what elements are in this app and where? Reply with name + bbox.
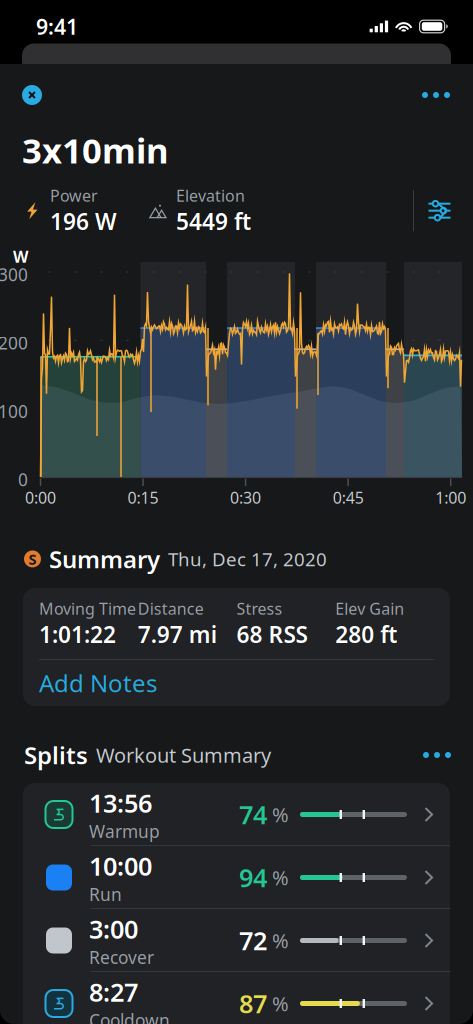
staticText: 0:45 [333, 487, 364, 508]
staticText: 196 W [50, 206, 117, 236]
staticText: 0:30 [230, 487, 261, 508]
staticText: 300 [0, 263, 28, 286]
staticText: Thu, Dec 17, 2020 [168, 546, 327, 571]
staticText: 72 [239, 924, 267, 957]
staticText: 3:00 [89, 912, 138, 946]
staticText: Power [50, 185, 98, 206]
staticText: Distance [138, 598, 204, 619]
staticText: 280 ft [335, 619, 397, 649]
staticText: 87 [239, 987, 267, 1020]
staticText: 1:00 [435, 487, 466, 508]
button[interactable]: More options [408, 75, 464, 115]
staticText: Cooldown [89, 1009, 170, 1024]
staticText: Add Notes [39, 667, 157, 699]
button[interactable]: 10:00 [23, 846, 450, 909]
button[interactable]: 13:56 [23, 783, 450, 846]
staticText: Stress [236, 598, 282, 619]
button[interactable]: Add Notes [23, 660, 450, 706]
button[interactable]: 3:00 [23, 909, 450, 972]
staticText: 94 [239, 861, 267, 894]
staticText: Elevation [176, 185, 245, 206]
button[interactable]: Splits options [409, 738, 465, 772]
staticText: 10:00 [89, 849, 152, 883]
staticText: S [28, 549, 36, 569]
staticText: % [272, 990, 289, 1017]
staticText: Warmup [89, 820, 160, 843]
staticText: % [272, 927, 289, 954]
staticText: Summary [49, 543, 160, 575]
staticText: 5449 ft [176, 206, 251, 236]
staticText: Elev Gain [335, 598, 404, 619]
button[interactable]: Close [9, 75, 55, 115]
staticText: 100 [0, 400, 28, 423]
staticText: 0:15 [128, 487, 159, 508]
button[interactable]: 8:27 [23, 972, 450, 1024]
staticText: Recover [89, 946, 154, 969]
staticText: Splits [24, 739, 88, 771]
staticText: 200 [0, 331, 28, 354]
staticText: % [272, 864, 289, 891]
staticText: 8:27 [89, 975, 138, 1009]
staticText: 68 RSS [236, 619, 307, 649]
staticText: 0 [18, 468, 28, 491]
staticText: Run [89, 883, 122, 906]
staticText: W [13, 246, 28, 267]
staticText: 3x10min [22, 127, 169, 173]
staticText: Moving Time [39, 598, 136, 619]
staticText: 9:41 [36, 12, 78, 41]
staticText: Workout Summary [96, 742, 271, 768]
staticText: 74 [239, 798, 267, 831]
staticText: % [272, 801, 289, 828]
staticText: 1:01:22 [39, 619, 116, 649]
staticText: 7.97 mi [138, 619, 217, 649]
staticText: 13:56 [89, 786, 152, 820]
button[interactable]: Chart settings [414, 189, 465, 233]
staticText: 0:00 [25, 487, 56, 508]
